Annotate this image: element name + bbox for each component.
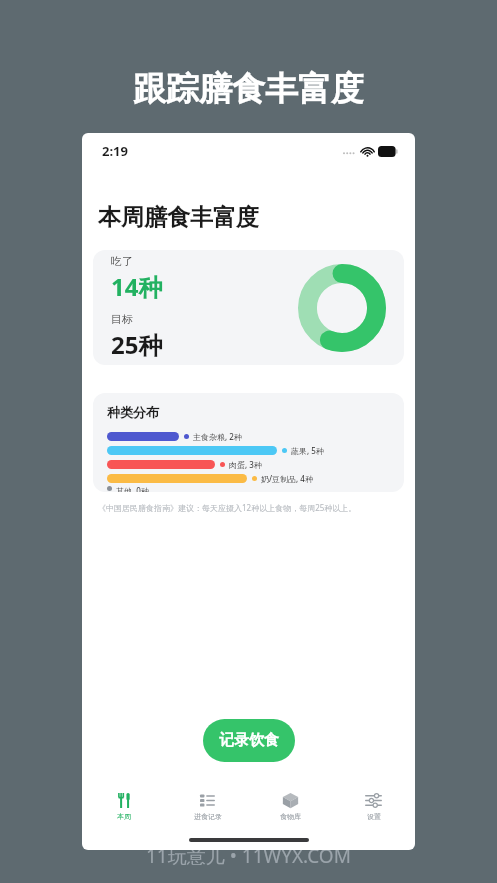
staticText: 本周	[117, 812, 131, 821]
staticText: 其他, 0种	[116, 485, 149, 492]
staticText: 记录饮食	[219, 731, 279, 750]
staticText: 肉蛋, 3种	[229, 459, 262, 470]
staticText: 目标	[111, 312, 133, 326]
staticText: 奶/豆制品, 4种	[261, 473, 313, 484]
other: 进食记录	[199, 792, 216, 809]
staticText: 进食记录	[194, 812, 222, 821]
button[interactable]: 进食记录	[166, 784, 249, 828]
other: 设置	[365, 792, 382, 809]
button[interactable]: 吃了	[93, 250, 404, 365]
button[interactable]: 食物库	[249, 784, 332, 828]
staticText: 食物库	[280, 812, 301, 821]
staticText: 《中国居民膳食指南》建议：每天应摄入12种以上食物，每周25种以上。	[98, 502, 357, 513]
button[interactable]: 设置	[332, 784, 415, 828]
other: 食物库	[282, 792, 299, 809]
staticText: 本周膳食丰富度	[98, 203, 259, 232]
staticText: 吃了	[111, 254, 133, 268]
staticText: 种类分布	[107, 404, 159, 420]
staticText: 主食杂粮, 2种	[193, 431, 242, 442]
staticText: 11玩意儿 • 11WYX.COM	[146, 843, 351, 869]
other: 本周	[116, 792, 133, 809]
staticText: 14种	[111, 270, 163, 303]
staticText: 蔬果, 5种	[291, 445, 324, 456]
staticText: 跟踪膳食丰富度	[133, 68, 364, 110]
button[interactable]: 种类分布	[93, 393, 404, 492]
staticText: 2:19	[102, 142, 128, 160]
button[interactable]: 本周	[82, 784, 166, 828]
staticText: 25种	[111, 328, 163, 361]
button[interactable]: 记录饮食	[203, 719, 295, 762]
staticText: 设置	[367, 812, 381, 821]
